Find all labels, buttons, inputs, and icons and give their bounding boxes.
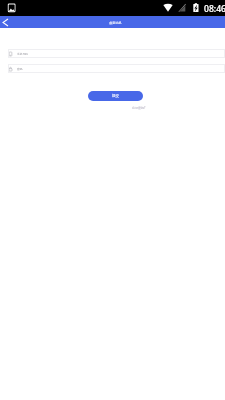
button[interactable]: 手机号码 bbox=[8, 49, 225, 58]
staticText: 手机号码 bbox=[17, 52, 28, 55]
staticText: 最新手机 bbox=[109, 21, 122, 25]
button[interactable]: 提交 bbox=[88, 91, 143, 101]
button[interactable]: Back bbox=[0, 16, 10, 28]
button[interactable]: 忘记密码? bbox=[132, 104, 146, 111]
staticText: 08:46 bbox=[204, 3, 225, 15]
button[interactable]: 密码 bbox=[8, 64, 225, 73]
staticText: 忘记密码? bbox=[132, 106, 146, 110]
staticText: 密码 bbox=[17, 67, 23, 70]
staticText: 提交 bbox=[112, 94, 120, 99]
